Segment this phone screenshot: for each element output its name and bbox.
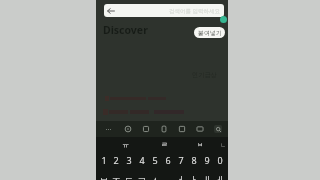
staticText: ㅠ xyxy=(122,140,129,149)
staticText: ㅔ xyxy=(215,174,225,180)
staticText: ㅕ xyxy=(176,174,186,180)
staticText: 0 xyxy=(217,154,223,166)
button[interactable]: GIF xyxy=(138,121,154,137)
staticText: 1 xyxy=(101,154,107,166)
button[interactable]: ㄷ xyxy=(122,174,135,180)
button[interactable]: ㅕ xyxy=(174,174,187,180)
button[interactable]: ㅑ xyxy=(187,174,200,180)
button[interactable]: 5 xyxy=(148,154,161,166)
button[interactable]: ㅅ xyxy=(148,174,161,180)
button[interactable]: Clipboard xyxy=(156,121,172,137)
staticText: ㅐ xyxy=(202,174,212,180)
staticText: 4 xyxy=(139,154,145,166)
button[interactable]: Stickers xyxy=(174,121,190,137)
staticText: ㅂ xyxy=(99,174,109,180)
button[interactable]: 9 xyxy=(200,154,213,166)
button[interactable]: ㅔ xyxy=(213,174,226,180)
button[interactable]: Search xyxy=(210,121,226,137)
button[interactable]: 0 xyxy=(213,154,226,166)
button[interactable] xyxy=(103,108,199,115)
button[interactable]: 1 xyxy=(98,154,110,166)
staticText: 3 xyxy=(126,154,132,166)
staticText: ㅑ xyxy=(189,174,199,180)
button[interactable]: ㅂ xyxy=(98,174,110,180)
staticText: ㄱ xyxy=(137,174,147,180)
button[interactable]: 7 xyxy=(174,154,187,166)
staticText: 8 xyxy=(191,154,197,166)
button[interactable]: 3 xyxy=(122,154,135,166)
staticText: ㅈ xyxy=(111,174,121,180)
button[interactable]: Translate xyxy=(192,121,208,137)
button[interactable]: ㅐ xyxy=(200,174,213,180)
button[interactable]: ㅈ xyxy=(110,174,122,180)
staticText: 5 xyxy=(152,154,158,166)
button[interactable]: 2 xyxy=(110,154,122,166)
staticText: 9 xyxy=(204,154,210,166)
staticText: ㅂ xyxy=(197,141,204,149)
button[interactable]: 6 xyxy=(161,154,174,166)
staticText: ㄹ xyxy=(161,140,168,149)
staticText: 붙여넣기 xyxy=(198,29,222,37)
button[interactable]: 4 xyxy=(135,154,148,166)
staticText: 7 xyxy=(178,154,184,166)
button[interactable]: More options xyxy=(100,121,117,137)
button[interactable]: 8 xyxy=(187,154,200,166)
button[interactable]: Emoji xyxy=(120,121,136,137)
button[interactable]: 붙여넣기 xyxy=(194,27,225,38)
button[interactable]: Back xyxy=(104,4,224,17)
staticText: ㅅ xyxy=(150,174,160,180)
staticText: 검색어를 입력하세요 xyxy=(169,7,220,15)
staticText: ㄷ xyxy=(124,174,134,180)
staticText: 2 xyxy=(113,154,119,166)
staticText: ㄴ xyxy=(220,141,226,149)
button[interactable] xyxy=(105,95,168,101)
staticText: Discover xyxy=(103,23,148,37)
button[interactable]: ㄱ xyxy=(135,174,148,180)
staticText: 6 xyxy=(165,154,171,166)
button[interactable]: Back xyxy=(104,4,117,17)
